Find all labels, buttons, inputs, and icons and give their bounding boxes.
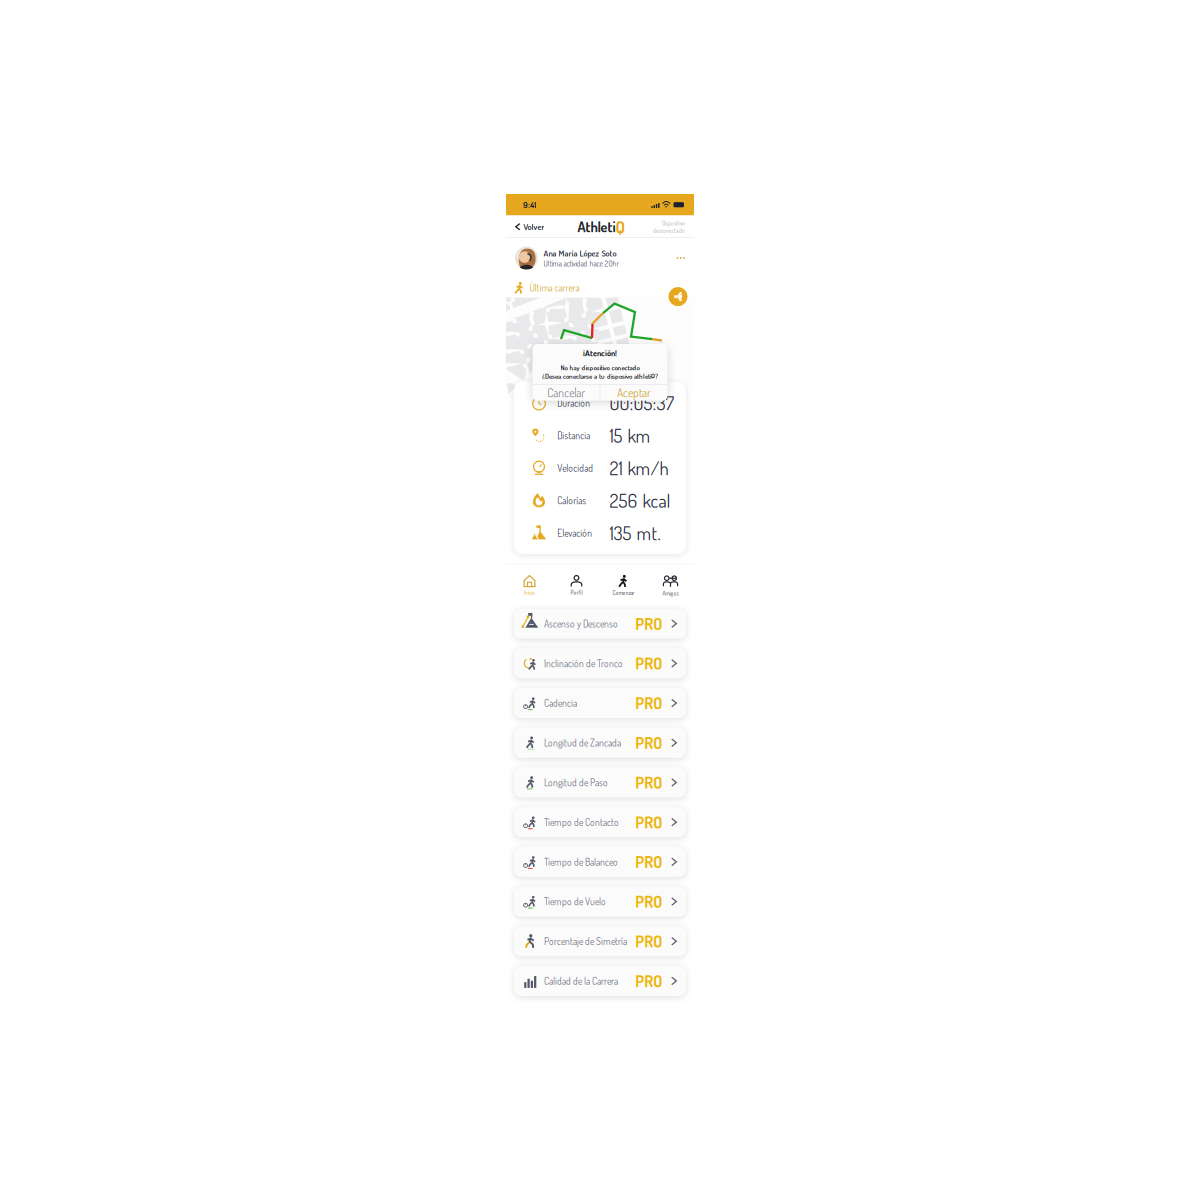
- staticText: Dispositivo: [662, 219, 685, 227]
- staticText: ¡Atención!: [583, 348, 617, 358]
- staticText: Cadencia: [544, 697, 577, 709]
- staticText: Porcentaje de Simetría: [544, 935, 627, 947]
- staticText: Comenzar: [612, 589, 634, 596]
- button[interactable]: Calidad de la Carrera: [514, 966, 686, 996]
- staticText: PRO: [635, 852, 662, 872]
- button[interactable]: Aceptar: [600, 384, 667, 401]
- button[interactable]: Inclinación de Tronco: [514, 648, 686, 678]
- staticText: PRO: [635, 733, 662, 753]
- button[interactable]: Más opciones: [670, 250, 691, 266]
- staticText: Ascenso y Descenso: [544, 617, 618, 630]
- staticText: ¿Desea conectarse a tu disposivo athleti…: [542, 372, 658, 380]
- staticText: Q: [616, 216, 625, 237]
- button[interactable]: Comenzar: [600, 564, 647, 607]
- staticText: Última carrera: [529, 282, 579, 294]
- staticText: Distancia: [557, 429, 590, 441]
- button[interactable]: Dispositivo: [653, 215, 694, 238]
- staticText: Amigos: [662, 590, 678, 597]
- staticText: Tiempo de Vuelo: [544, 895, 606, 908]
- staticText: Tiempo de Balanceo: [544, 856, 618, 868]
- button[interactable]: Ascenso y Descenso: [514, 609, 686, 639]
- button[interactable]: Tiempo de Contacto: [514, 807, 686, 837]
- button[interactable]: Porcentaje de Simetría: [514, 926, 686, 956]
- staticText: Perfil: [570, 589, 582, 596]
- staticText: Volver: [523, 221, 544, 232]
- button[interactable]: Tiempo de Balanceo: [514, 847, 686, 877]
- staticText: Ana María López Soto: [543, 248, 616, 259]
- staticText: PRO: [635, 971, 662, 991]
- button[interactable]: Longitud de Paso: [514, 767, 686, 797]
- staticText: Aceptar: [617, 385, 651, 400]
- staticText: Cancelar: [547, 385, 585, 400]
- staticText: Calorías: [557, 494, 586, 506]
- staticText: desconectado: [653, 227, 685, 234]
- staticText: Ultima actividad hace 20hr: [543, 259, 619, 268]
- staticText: 9:41: [523, 199, 536, 210]
- staticText: Calidad de la Carrera: [544, 975, 618, 987]
- staticText: Velocidad: [557, 462, 593, 474]
- staticText: Duración: [557, 397, 590, 409]
- staticText: Tiempo de Contacto: [544, 816, 619, 828]
- button[interactable]: Cadencia: [514, 688, 686, 718]
- staticText: PRO: [635, 812, 662, 832]
- staticText: PRO: [635, 772, 662, 792]
- button[interactable]: Volver: [506, 216, 544, 237]
- staticText: PRO: [635, 693, 662, 713]
- staticText: PRO: [635, 653, 662, 673]
- staticText: Longitud de Paso: [544, 776, 608, 788]
- button[interactable]: Inicio: [506, 564, 553, 607]
- staticText: 21 km/h: [610, 456, 669, 480]
- button[interactable]: Amigos: [647, 564, 694, 607]
- staticText: 256 kcal: [610, 489, 671, 512]
- staticText: PRO: [635, 891, 662, 912]
- button[interactable]: Cancelar: [532, 384, 600, 401]
- staticText: No hay dispositivo conectado: [560, 363, 639, 372]
- staticText: Longitud de Zancada: [544, 737, 621, 749]
- staticText: Athleti: [577, 218, 615, 236]
- staticText: PRO: [635, 931, 662, 951]
- button[interactable]: Compartir: [664, 283, 691, 310]
- button[interactable]: Perfil: [553, 564, 600, 607]
- staticText: 135 mt.: [610, 521, 661, 545]
- staticText: PRO: [635, 614, 662, 634]
- staticText: Inicio: [524, 589, 535, 596]
- button[interactable]: Longitud de Zancada: [514, 728, 686, 758]
- staticText: Inclinación de Tronco: [544, 657, 623, 669]
- staticText: 15 km: [610, 424, 651, 447]
- staticText: 00:05:37: [610, 391, 675, 415]
- staticText: Elevación: [557, 527, 592, 539]
- button[interactable]: Tiempo de Vuelo: [514, 886, 686, 917]
